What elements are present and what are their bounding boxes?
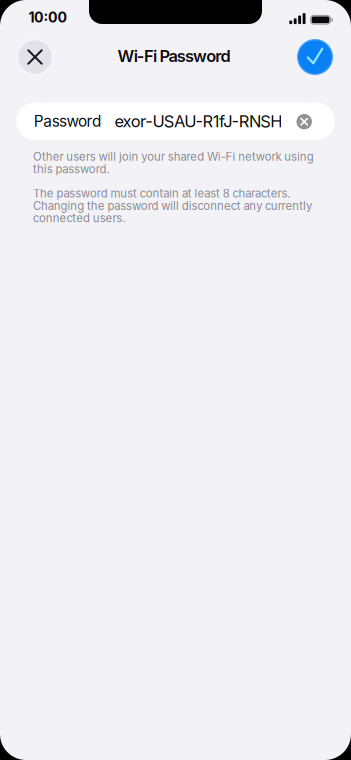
button[interactable]: Password, exor-USAU-R1fJ-RNSH <box>16 102 335 140</box>
staticText: exor-USAU-R1fJ-RNSH <box>114 111 282 131</box>
staticText: Password <box>34 112 101 131</box>
staticText: The password must contain at least 8 cha… <box>33 187 290 200</box>
staticText: Wi-Fi Password <box>117 46 230 66</box>
button[interactable]: Close <box>17 39 53 75</box>
staticText: connected users. <box>33 211 125 225</box>
staticText: Other users will join your shared Wi-Fi … <box>33 150 314 164</box>
staticText: 10:00 <box>28 9 68 26</box>
staticText: this password. <box>33 162 109 176</box>
button[interactable]: Clear text <box>296 114 312 129</box>
staticText: Changing the password will disconnect an… <box>33 199 312 213</box>
button[interactable]: Done <box>297 39 333 75</box>
